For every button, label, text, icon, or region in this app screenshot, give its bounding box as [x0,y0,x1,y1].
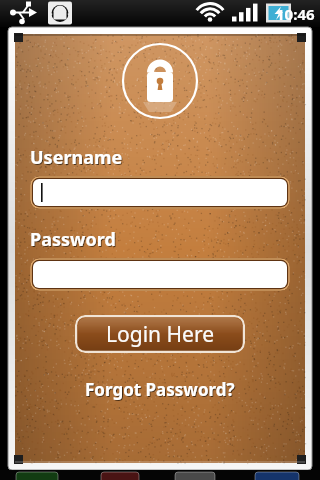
button[interactable] [30,258,290,291]
other: Secure login [120,41,200,121]
staticText: Forgot Password? [86,379,236,402]
staticText: Login Here [106,320,214,349]
staticText: Password [31,228,117,253]
staticText: Username [30,145,123,170]
staticText: Forgot Password? [85,378,235,401]
button[interactable] [30,176,290,209]
staticText: Username [31,146,124,171]
staticText: Password [30,227,116,252]
staticText: 10:46 [276,4,315,24]
button[interactable]: Forgot Password? [79,375,241,404]
button[interactable]: Login Here [75,315,245,353]
